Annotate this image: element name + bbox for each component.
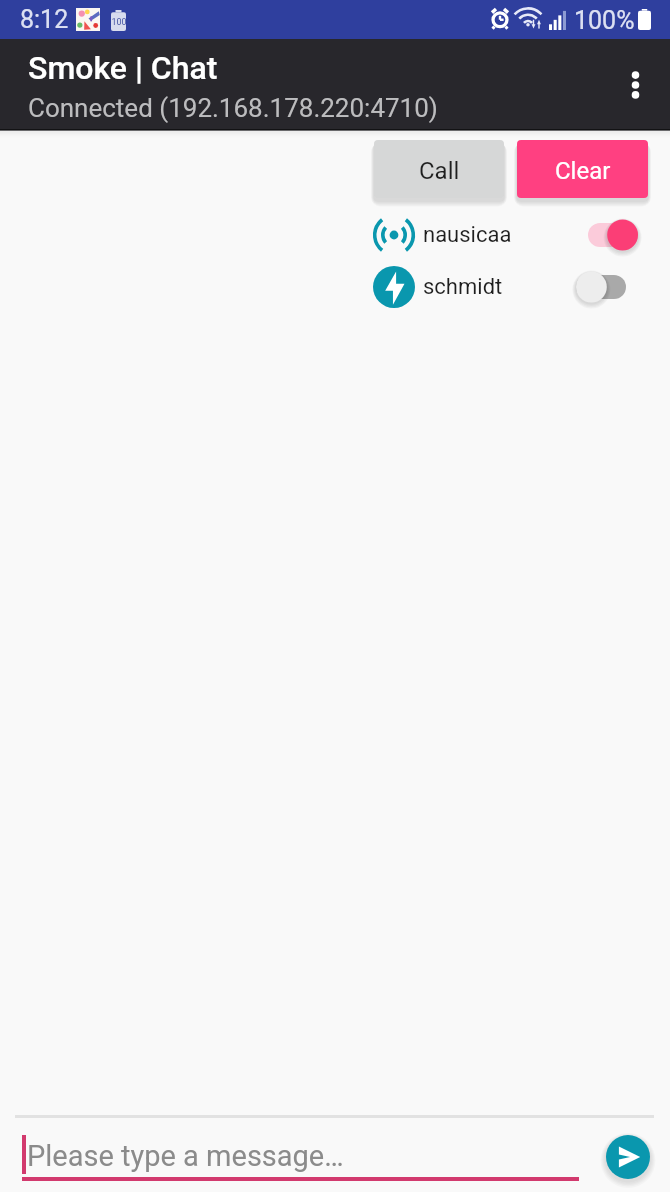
staticText: Call [419,157,460,185]
button[interactable]: Send [606,1135,650,1179]
button[interactable]: Clear [517,140,648,198]
staticText: 8:12 [20,5,69,34]
staticText: 100 [111,17,126,28]
staticText: Clear [555,157,611,185]
staticText: nausicaa [423,222,512,248]
button[interactable]: nausicaa [366,212,656,258]
staticText: Smoke | Chat [28,49,218,87]
staticText: Connected (192.168.178.220:4710) [28,93,438,123]
button[interactable]: schmidt [366,264,656,310]
staticText: Please type a message… [27,1139,344,1173]
button[interactable]: More options [607,39,663,129]
button[interactable]: Call [374,140,504,198]
staticText: schmidt [423,274,503,300]
staticText: 100% [574,6,635,35]
